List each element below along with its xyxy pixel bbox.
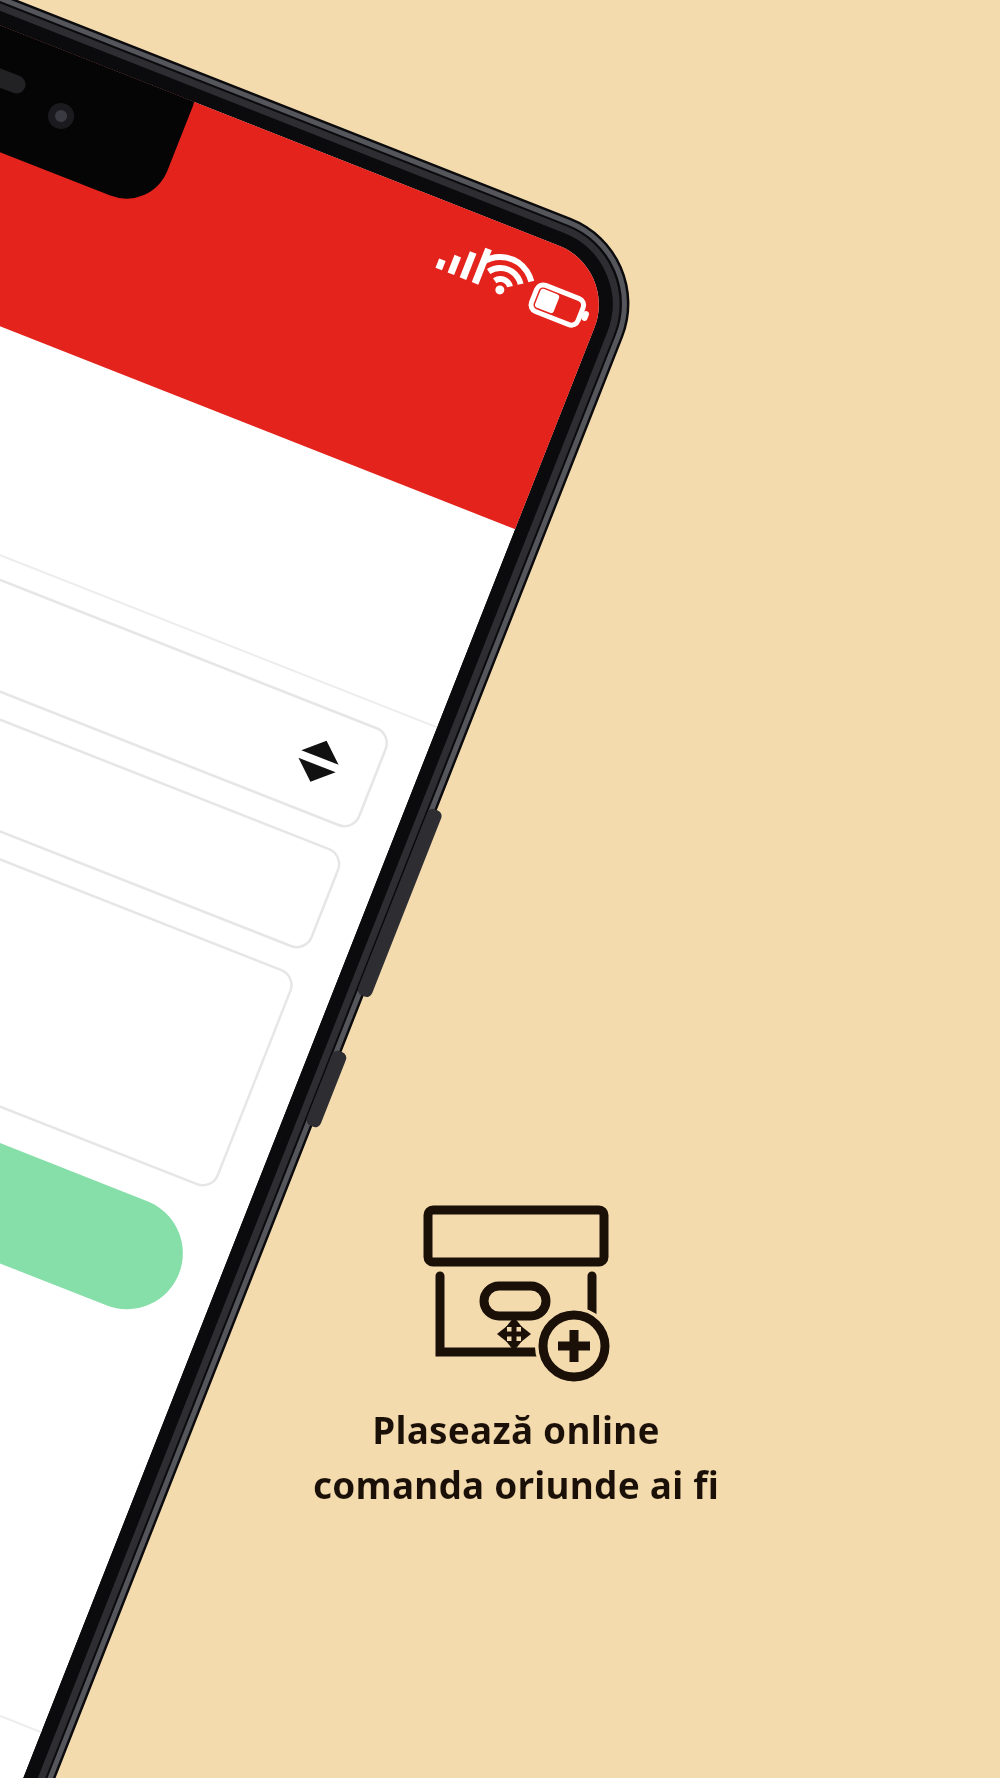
button[interactable]: Plasează online comanda oriunde ai fi [0,0,1000,1778]
